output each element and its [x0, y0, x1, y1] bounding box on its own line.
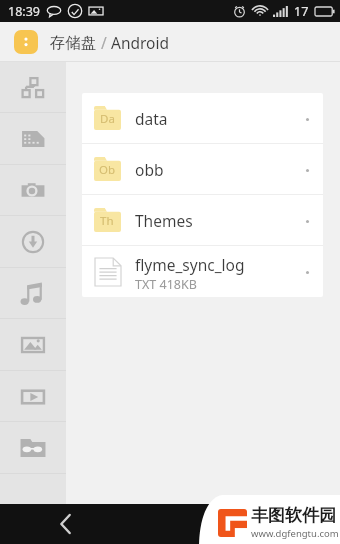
- staticText: 17: [294, 3, 309, 20]
- button[interactable]: flyme_sync_log: [82, 246, 323, 297]
- staticText: flyme_sync_log: [135, 254, 245, 275]
- button[interactable]: More options: [294, 208, 320, 234]
- button[interactable]: Camera: [0, 165, 66, 217]
- button[interactable]: Back: [48, 507, 82, 541]
- staticText: www.dgfengtu.com: [251, 527, 339, 540]
- staticText: /: [97, 32, 111, 53]
- staticText: Android: [111, 32, 170, 53]
- button[interactable]: More options: [294, 157, 320, 183]
- staticText: Themes: [135, 210, 193, 231]
- button[interactable]: Ob: [82, 144, 323, 195]
- button[interactable]: Favorites: [0, 422, 66, 474]
- button[interactable]: Music: [0, 268, 66, 320]
- button[interactable]: More options: [294, 106, 320, 132]
- staticText: 18:39: [8, 3, 40, 20]
- button[interactable]: Da: [82, 93, 323, 144]
- button[interactable]: Documents: [0, 113, 66, 165]
- button[interactable]: Videos: [0, 371, 66, 423]
- staticText: obb: [135, 159, 164, 180]
- staticText: 存储盘: [50, 33, 97, 53]
- staticText: Th: [100, 213, 114, 229]
- staticText: Da: [100, 111, 115, 127]
- button[interactable]: Downloads: [0, 216, 66, 268]
- button[interactable]: Pictures: [0, 319, 66, 371]
- staticText: 丰图软件园: [251, 505, 336, 526]
- staticText: Ob: [99, 162, 116, 178]
- staticText: TXT 418KB: [135, 276, 197, 293]
- button[interactable]: Storage: [14, 30, 38, 54]
- staticText: data: [135, 108, 168, 129]
- button[interactable]: More options: [294, 259, 320, 285]
- button[interactable]: Th: [82, 195, 323, 246]
- button[interactable]: Apps: [0, 62, 66, 114]
